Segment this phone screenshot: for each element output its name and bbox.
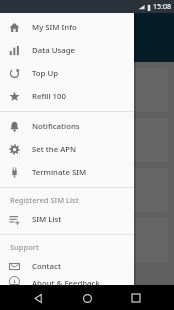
button[interactable]: Top Up bbox=[0, 62, 134, 85]
staticText: Data Usage bbox=[32, 45, 75, 56]
staticText: Terminate SIM bbox=[32, 167, 87, 178]
staticText: 15:08 bbox=[153, 2, 171, 12]
staticText: My SIM Info bbox=[32, 22, 77, 33]
button[interactable]: My SIM Info bbox=[0, 16, 134, 39]
button[interactable]: About & Feedback bbox=[0, 278, 134, 285]
staticText: Top Up bbox=[32, 68, 59, 79]
button[interactable]: Notifications bbox=[0, 115, 134, 138]
staticText: SIM List bbox=[32, 214, 62, 225]
button[interactable]: Terminate SIM bbox=[0, 161, 134, 184]
button[interactable]: Home bbox=[76, 287, 98, 309]
button[interactable]: Recents bbox=[125, 287, 147, 309]
staticText: Top Up bbox=[10, 45, 40, 57]
staticText: Notifications bbox=[32, 121, 80, 132]
button[interactable]: Refill 100 bbox=[0, 85, 134, 108]
button[interactable]: Set the APN bbox=[0, 138, 134, 161]
staticText: Refill 100 bbox=[32, 91, 66, 102]
button[interactable]: Back bbox=[27, 287, 49, 309]
staticText: Support bbox=[10, 242, 39, 252]
staticText: Set the APN bbox=[32, 144, 77, 155]
button[interactable]: SIM List bbox=[0, 208, 134, 231]
staticText: Contact bbox=[32, 261, 61, 272]
button[interactable]: Data Usage bbox=[0, 39, 134, 62]
staticText: Registered SIM List bbox=[10, 195, 79, 205]
staticText: About & Feedback bbox=[32, 278, 100, 285]
button[interactable]: Contact bbox=[0, 255, 134, 278]
